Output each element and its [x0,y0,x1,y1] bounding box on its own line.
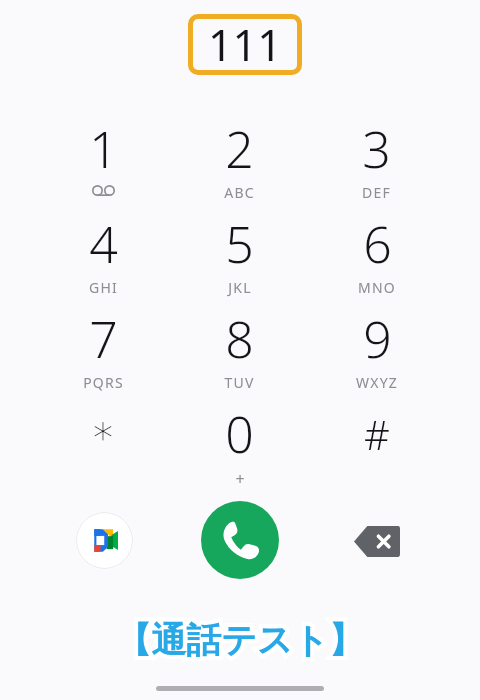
button[interactable]: 8 [171,302,308,397]
staticText: 1 [89,115,118,183]
staticText: WXYZ [356,373,398,392]
staticText: PQRS [83,373,124,392]
staticText: JKL [228,278,252,297]
button[interactable]: 4 [35,207,171,302]
staticText: 2 [225,115,254,183]
staticText: ∗ [90,407,116,454]
staticText: 0 [225,400,254,468]
staticText: MNO [358,278,396,297]
staticText: 111 [208,15,282,74]
button[interactable]: 7 [35,302,171,397]
staticText: 8 [225,305,254,373]
button[interactable]: # [308,397,445,492]
button[interactable]: 5 [171,207,308,302]
button[interactable]: 9 [308,302,445,397]
button[interactable]: Backspace [346,514,408,568]
staticText: 7 [89,305,118,373]
staticText: 6 [363,210,392,278]
staticText: 5 [225,210,254,278]
staticText: DEF [362,183,391,202]
button[interactable]: 6 [308,207,445,302]
staticText: GHI [89,278,118,297]
button[interactable]: 0 [171,397,308,492]
button[interactable]: 2 [171,112,308,207]
staticText: 3 [362,115,391,183]
button[interactable]: 1 [35,112,171,207]
staticText: 9 [363,305,392,373]
button[interactable]: Dialed number 111 [188,14,302,75]
staticText: TUV [224,373,255,392]
staticText: 4 [89,210,118,278]
button[interactable]: Call [201,501,279,579]
staticText: # [364,407,390,461]
staticText: + [235,468,245,490]
staticText: ABC [224,183,255,202]
button[interactable]: Video call with Google Meet [76,512,133,569]
staticText: 【通話テスト】 [116,618,364,662]
button[interactable]: 3 [308,112,445,207]
button[interactable]: ∗ [35,397,171,492]
staticText: 【通話テスト】 [116,618,364,662]
